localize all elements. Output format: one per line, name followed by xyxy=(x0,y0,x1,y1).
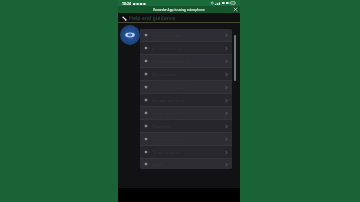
button[interactable]: Dismiss xyxy=(233,7,238,12)
staticText: Recorder App is using microphone xyxy=(153,8,205,12)
button[interactable]: Storage and data xyxy=(140,94,232,106)
button[interactable]: Notifications xyxy=(140,68,232,80)
button[interactable]: Getting started xyxy=(140,29,232,41)
button[interactable]: Recorder App is using microphone xyxy=(118,6,240,13)
button[interactable]: Linked devices xyxy=(140,107,232,119)
button[interactable]: Call xyxy=(121,15,127,21)
button[interactable]: Calls and messages xyxy=(140,81,232,93)
button[interactable]: Payments xyxy=(140,120,232,132)
button[interactable]: Profile xyxy=(120,25,140,45)
button[interactable]: Call xyxy=(118,13,240,22)
button[interactable]: Report a problem xyxy=(140,133,232,145)
staticText: Help and guidance xyxy=(129,14,176,21)
button[interactable]: Terms of service xyxy=(140,146,232,158)
staticText: 10:24 xyxy=(122,1,131,6)
button[interactable]: Privacy and security xyxy=(140,55,232,67)
button[interactable]: Account settings xyxy=(140,42,232,54)
button[interactable]: About xyxy=(140,159,232,169)
